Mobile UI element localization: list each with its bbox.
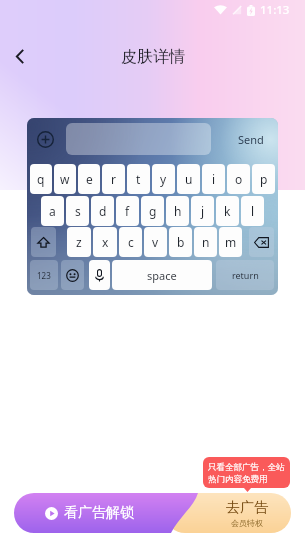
button[interactable]: l: [241, 196, 264, 226]
staticText: 会员特权: [231, 518, 263, 528]
button[interactable]: q: [30, 164, 52, 194]
staticText: q: [37, 171, 45, 187]
staticText: s: [75, 203, 81, 219]
button[interactable]: e: [78, 164, 100, 194]
button[interactable]: p: [252, 164, 275, 194]
staticText: b: [177, 234, 185, 250]
button[interactable]: 看广告解锁: [14, 493, 198, 533]
staticText: l: [251, 203, 255, 219]
staticText: 只看全部广告，全站 热门内容免费用: [208, 462, 285, 484]
button[interactable]: n: [194, 227, 217, 257]
staticText: w: [60, 171, 70, 187]
staticText: c: [128, 234, 134, 250]
button[interactable]: Emoji: [61, 260, 84, 290]
button[interactable]: g: [141, 196, 164, 226]
staticText: x: [102, 234, 109, 250]
button[interactable]: z: [67, 227, 91, 257]
staticText: h: [174, 203, 182, 219]
staticText: r: [111, 171, 116, 187]
button[interactable]: t: [127, 164, 150, 194]
staticText: j: [201, 203, 205, 219]
button[interactable]: return: [216, 260, 274, 290]
button[interactable]: Back: [2, 39, 37, 74]
staticText: 11:13: [260, 2, 290, 18]
button[interactable]: v: [144, 227, 167, 257]
staticText: 去广告: [226, 499, 268, 517]
button[interactable]: s: [66, 196, 89, 226]
button[interactable]: m: [219, 227, 242, 257]
staticText: return: [232, 269, 259, 281]
staticText: k: [224, 203, 231, 219]
staticText: 123: [37, 270, 51, 281]
staticText: a: [49, 203, 56, 219]
staticText: f: [125, 203, 130, 219]
button[interactable]: r: [102, 164, 125, 194]
button[interactable]: u: [177, 164, 200, 194]
button[interactable]: k: [216, 196, 239, 226]
staticText: v: [152, 234, 159, 250]
staticText: d: [99, 203, 107, 219]
staticText: o: [235, 171, 243, 187]
button[interactable]: x: [93, 227, 117, 257]
button[interactable]: d: [91, 196, 114, 226]
button[interactable]: a: [41, 196, 64, 226]
staticText: u: [185, 171, 193, 187]
staticText: y: [160, 171, 167, 187]
button[interactable]: 只看全部广告，全站 热门内容免费用: [203, 457, 290, 488]
staticText: g: [149, 203, 157, 219]
button[interactable]: 123: [30, 260, 58, 290]
button[interactable]: space: [112, 260, 212, 290]
staticText: t: [136, 171, 141, 187]
staticText: m: [225, 234, 237, 250]
button[interactable]: c: [119, 227, 142, 257]
staticText: n: [202, 234, 210, 250]
staticText: i: [212, 171, 216, 187]
button[interactable]: Add: [36, 130, 54, 148]
staticText: space: [147, 268, 177, 283]
button[interactable]: Delete: [249, 227, 274, 257]
button[interactable]: o: [227, 164, 250, 194]
button[interactable]: w: [54, 164, 76, 194]
button[interactable]: f: [116, 196, 139, 226]
button[interactable]: [66, 123, 211, 155]
button[interactable]: h: [166, 196, 189, 226]
button[interactable]: b: [169, 227, 192, 257]
button[interactable]: y: [152, 164, 175, 194]
button[interactable]: j: [191, 196, 214, 226]
staticText: p: [260, 171, 268, 187]
button[interactable]: Voice input: [89, 260, 110, 290]
staticText: Send: [238, 132, 264, 147]
button[interactable]: i: [202, 164, 225, 194]
staticText: 皮肤详情: [121, 47, 185, 67]
button[interactable]: Shift: [31, 227, 56, 257]
staticText: e: [86, 171, 93, 187]
button[interactable]: 去广告: [165, 493, 291, 533]
staticText: z: [76, 234, 82, 250]
staticText: 看广告解锁: [64, 504, 134, 522]
